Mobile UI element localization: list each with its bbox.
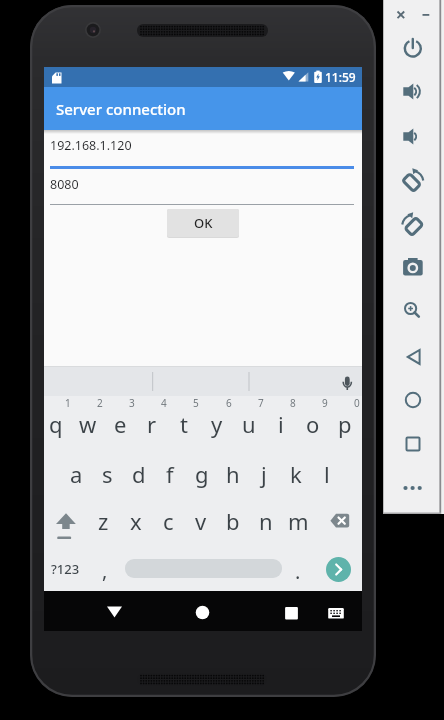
staticText: z — [98, 506, 109, 536]
staticText: 1 — [65, 396, 71, 410]
staticText: m — [288, 506, 309, 536]
button[interactable]: f — [155, 457, 185, 491]
button[interactable] — [325, 605, 349, 623]
staticText: v — [195, 506, 207, 536]
button[interactable] — [395, 208, 431, 240]
staticText: Server connection — [56, 99, 186, 119]
button[interactable]: x — [121, 504, 151, 538]
button[interactable]: b — [218, 504, 248, 538]
button[interactable]: p — [330, 407, 360, 441]
button[interactable] — [395, 75, 431, 107]
staticText: p — [338, 409, 352, 439]
button[interactable]: k — [281, 457, 311, 491]
staticText: 3 — [129, 396, 135, 410]
button[interactable]: w — [73, 407, 103, 441]
staticText: 8 — [290, 396, 296, 410]
staticText: 5 — [193, 396, 199, 410]
staticText: n — [259, 506, 273, 536]
button[interactable]: v — [186, 504, 216, 538]
staticText: i — [278, 409, 284, 439]
button[interactable]: . — [288, 554, 308, 588]
staticText: ?123 — [51, 560, 80, 578]
button[interactable] — [326, 508, 356, 534]
button[interactable] — [44, 396, 362, 591]
staticText: a — [70, 459, 83, 489]
staticText: r — [147, 409, 157, 439]
staticText: t — [180, 409, 188, 439]
button[interactable] — [395, 164, 431, 196]
button[interactable] — [125, 559, 282, 578]
staticText: x — [130, 506, 142, 536]
staticText: 9 — [322, 396, 328, 410]
button[interactable]: g — [187, 457, 217, 491]
button[interactable]: z — [88, 504, 118, 538]
button[interactable]: o — [298, 407, 328, 441]
staticText: 4 — [161, 396, 167, 410]
staticText: 0 — [354, 396, 360, 410]
staticText: 2 — [97, 396, 103, 410]
button[interactable]: q — [41, 407, 71, 441]
staticText: b — [226, 506, 240, 536]
staticText: 8080 — [50, 176, 79, 193]
staticText: . — [295, 558, 301, 585]
button[interactable] — [48, 507, 86, 543]
button[interactable]: s — [92, 457, 122, 491]
staticText: q — [49, 409, 63, 439]
staticText: o — [306, 409, 320, 439]
button[interactable]: , — [95, 553, 115, 587]
button[interactable]: 8080 — [50, 172, 356, 197]
staticText: f — [166, 459, 174, 489]
button[interactable]: m — [283, 504, 313, 538]
staticText: 11:59 — [325, 69, 356, 85]
button[interactable]: d — [124, 457, 154, 491]
button[interactable] — [188, 598, 218, 624]
staticText: 7 — [258, 396, 264, 410]
staticText: 6 — [226, 396, 232, 410]
staticText: y — [211, 409, 223, 439]
button[interactable] — [395, 340, 431, 372]
button[interactable]: h — [218, 457, 248, 491]
button[interactable]: i — [266, 407, 296, 441]
staticText: , — [102, 557, 108, 584]
button[interactable]: t — [169, 407, 199, 441]
button[interactable]: l — [312, 457, 342, 491]
staticText: h — [226, 459, 240, 489]
staticText: d — [132, 459, 146, 489]
button[interactable]: u — [234, 407, 264, 441]
button[interactable]: c — [153, 504, 183, 538]
staticText: g — [195, 459, 209, 489]
staticText: e — [114, 409, 127, 439]
staticText: 192.168.1.120 — [50, 137, 132, 154]
button[interactable] — [395, 32, 431, 64]
button[interactable]: r — [137, 407, 167, 441]
button[interactable] — [395, 428, 431, 460]
button[interactable]: y — [202, 407, 232, 441]
staticText: w — [79, 409, 97, 439]
button[interactable] — [395, 294, 431, 326]
button[interactable]: ?123 — [45, 552, 85, 586]
staticText: l — [324, 459, 330, 489]
button[interactable]: a — [61, 457, 91, 491]
button[interactable] — [395, 120, 431, 152]
staticText: k — [290, 459, 302, 489]
button[interactable] — [395, 251, 431, 283]
staticText: c — [163, 506, 174, 536]
staticText: j — [261, 459, 267, 489]
button[interactable] — [100, 599, 130, 623]
button[interactable]: 192.168.1.120 — [50, 133, 356, 158]
button[interactable]: j — [249, 457, 279, 491]
button[interactable] — [277, 598, 307, 624]
button[interactable]: n — [251, 504, 281, 538]
staticText: u — [242, 409, 256, 439]
button[interactable] — [395, 472, 431, 504]
staticText: OK — [194, 214, 213, 232]
button[interactable] — [326, 557, 351, 582]
staticText: s — [102, 459, 113, 489]
button[interactable] — [395, 384, 431, 416]
button[interactable]: e — [105, 407, 135, 441]
button[interactable]: OK — [167, 209, 239, 237]
